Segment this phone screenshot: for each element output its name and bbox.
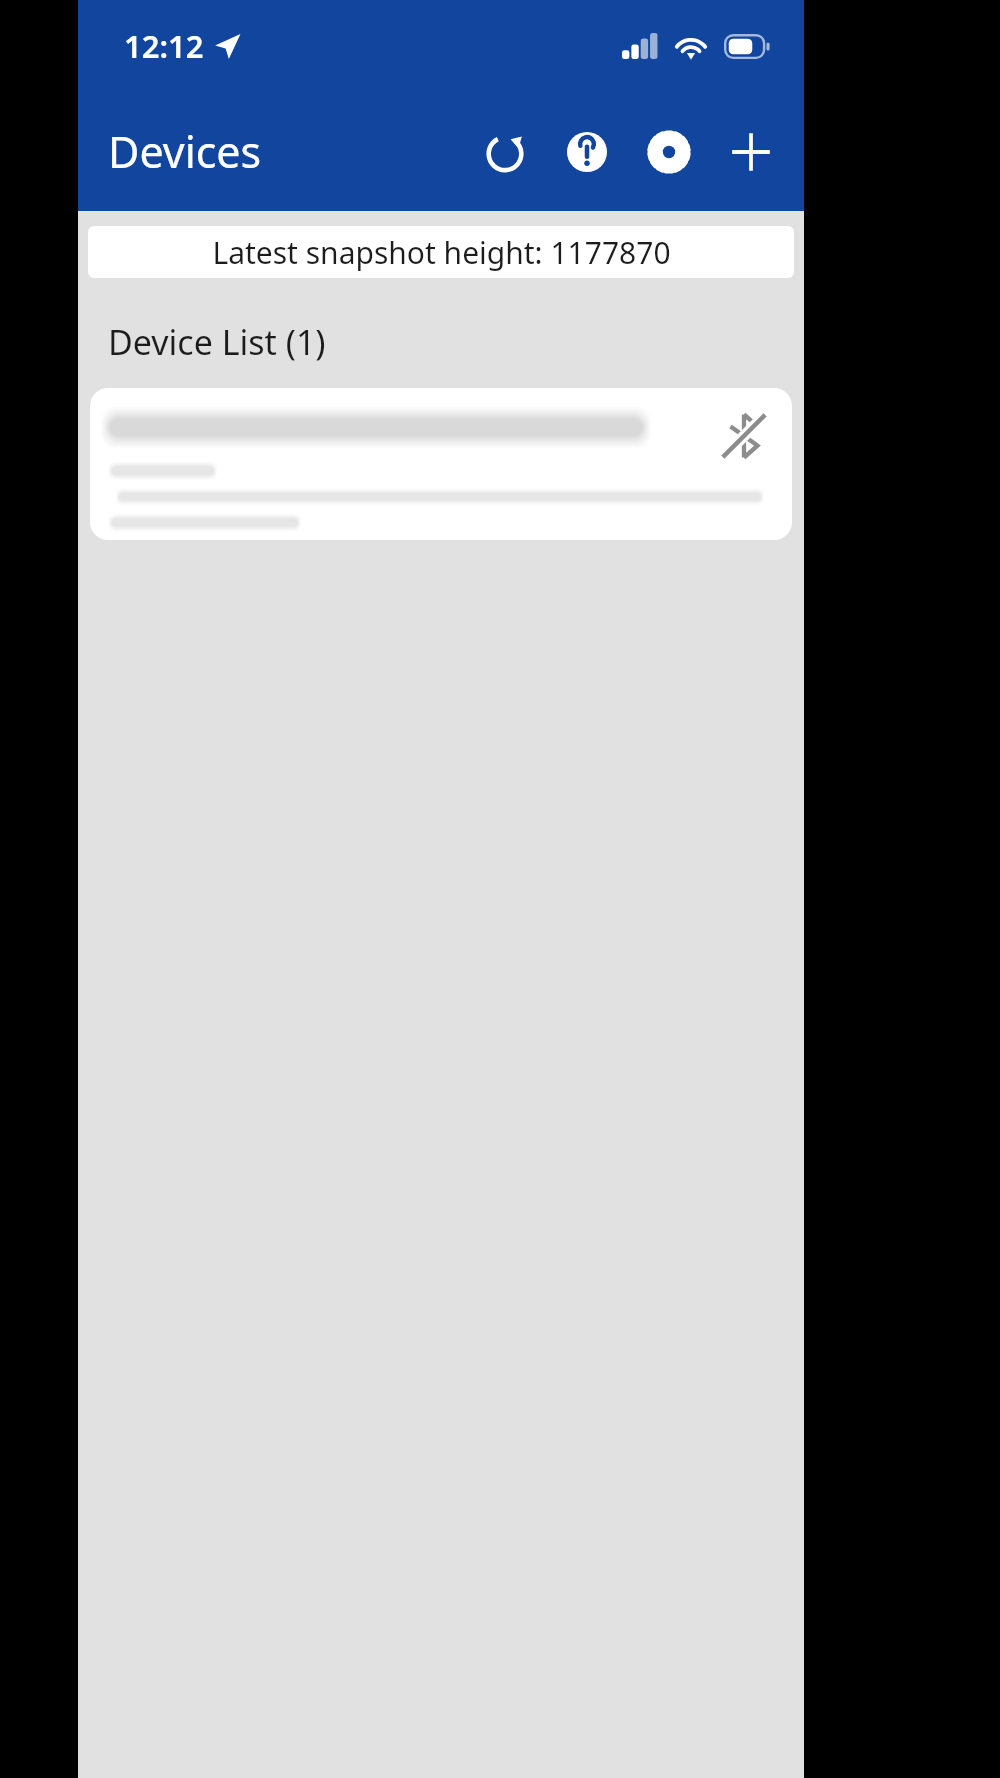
button[interactable]: Latest snapshot height: 1177870: [88, 226, 794, 278]
button[interactable]: Bluetooth disconnected: [90, 388, 792, 540]
staticText: 12:12: [124, 25, 204, 67]
button[interactable]: Refresh: [472, 119, 538, 185]
staticText: Devices: [108, 122, 262, 181]
button[interactable]: Settings: [636, 119, 702, 185]
button[interactable]: Bluetooth disconnected: [712, 404, 776, 468]
staticText: Device List (1): [108, 319, 326, 365]
button[interactable]: Add device: [718, 119, 784, 185]
staticText: Latest snapshot height: 1177870: [212, 232, 671, 273]
button[interactable]: Help: [554, 119, 620, 185]
